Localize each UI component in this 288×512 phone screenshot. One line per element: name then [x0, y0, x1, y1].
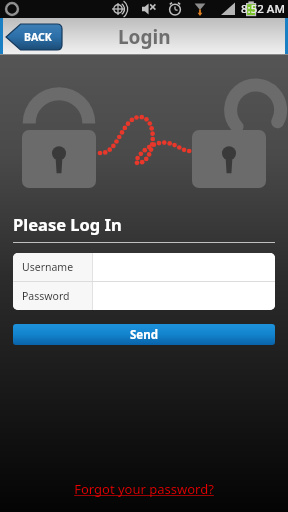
- staticText: Username: [22, 260, 74, 274]
- button[interactable]: Username: [13, 253, 275, 281]
- staticText: 8:52 AM: [241, 1, 285, 17]
- button[interactable]: Send: [13, 324, 275, 345]
- staticText: Please Log In: [13, 213, 122, 235]
- button[interactable]: Password: [13, 282, 275, 310]
- button[interactable]: Back: [6, 24, 62, 50]
- staticText: BACK: [24, 30, 52, 44]
- staticText: Password: [22, 289, 70, 303]
- button[interactable]: Forgot your password?: [70, 476, 218, 502]
- staticText: Send: [130, 327, 158, 343]
- staticText: Login: [118, 24, 171, 50]
